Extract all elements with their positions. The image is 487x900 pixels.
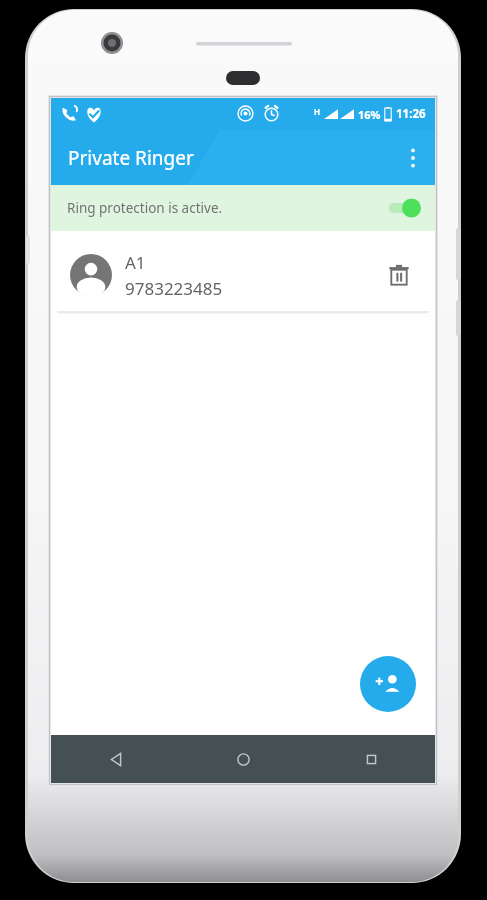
staticText: Private Ringer	[68, 145, 194, 171]
button[interactable]: Recents	[307, 735, 435, 783]
button[interactable]: A1	[56, 239, 430, 311]
staticText: 16%	[358, 107, 381, 122]
button[interactable]: Ring protection is active.	[51, 185, 435, 231]
staticText: H	[314, 106, 321, 117]
button[interactable]: Add contact	[360, 656, 416, 712]
staticText: A1	[125, 251, 146, 274]
staticText: Ring protection is active.	[67, 199, 387, 217]
button[interactable]: Delete contact	[378, 254, 420, 296]
button[interactable]: Back	[51, 735, 179, 783]
staticText: 9783223485	[125, 277, 223, 300]
button[interactable]: More options	[391, 136, 435, 180]
button[interactable]: Home	[179, 735, 307, 783]
staticText: 11:26	[396, 106, 426, 122]
